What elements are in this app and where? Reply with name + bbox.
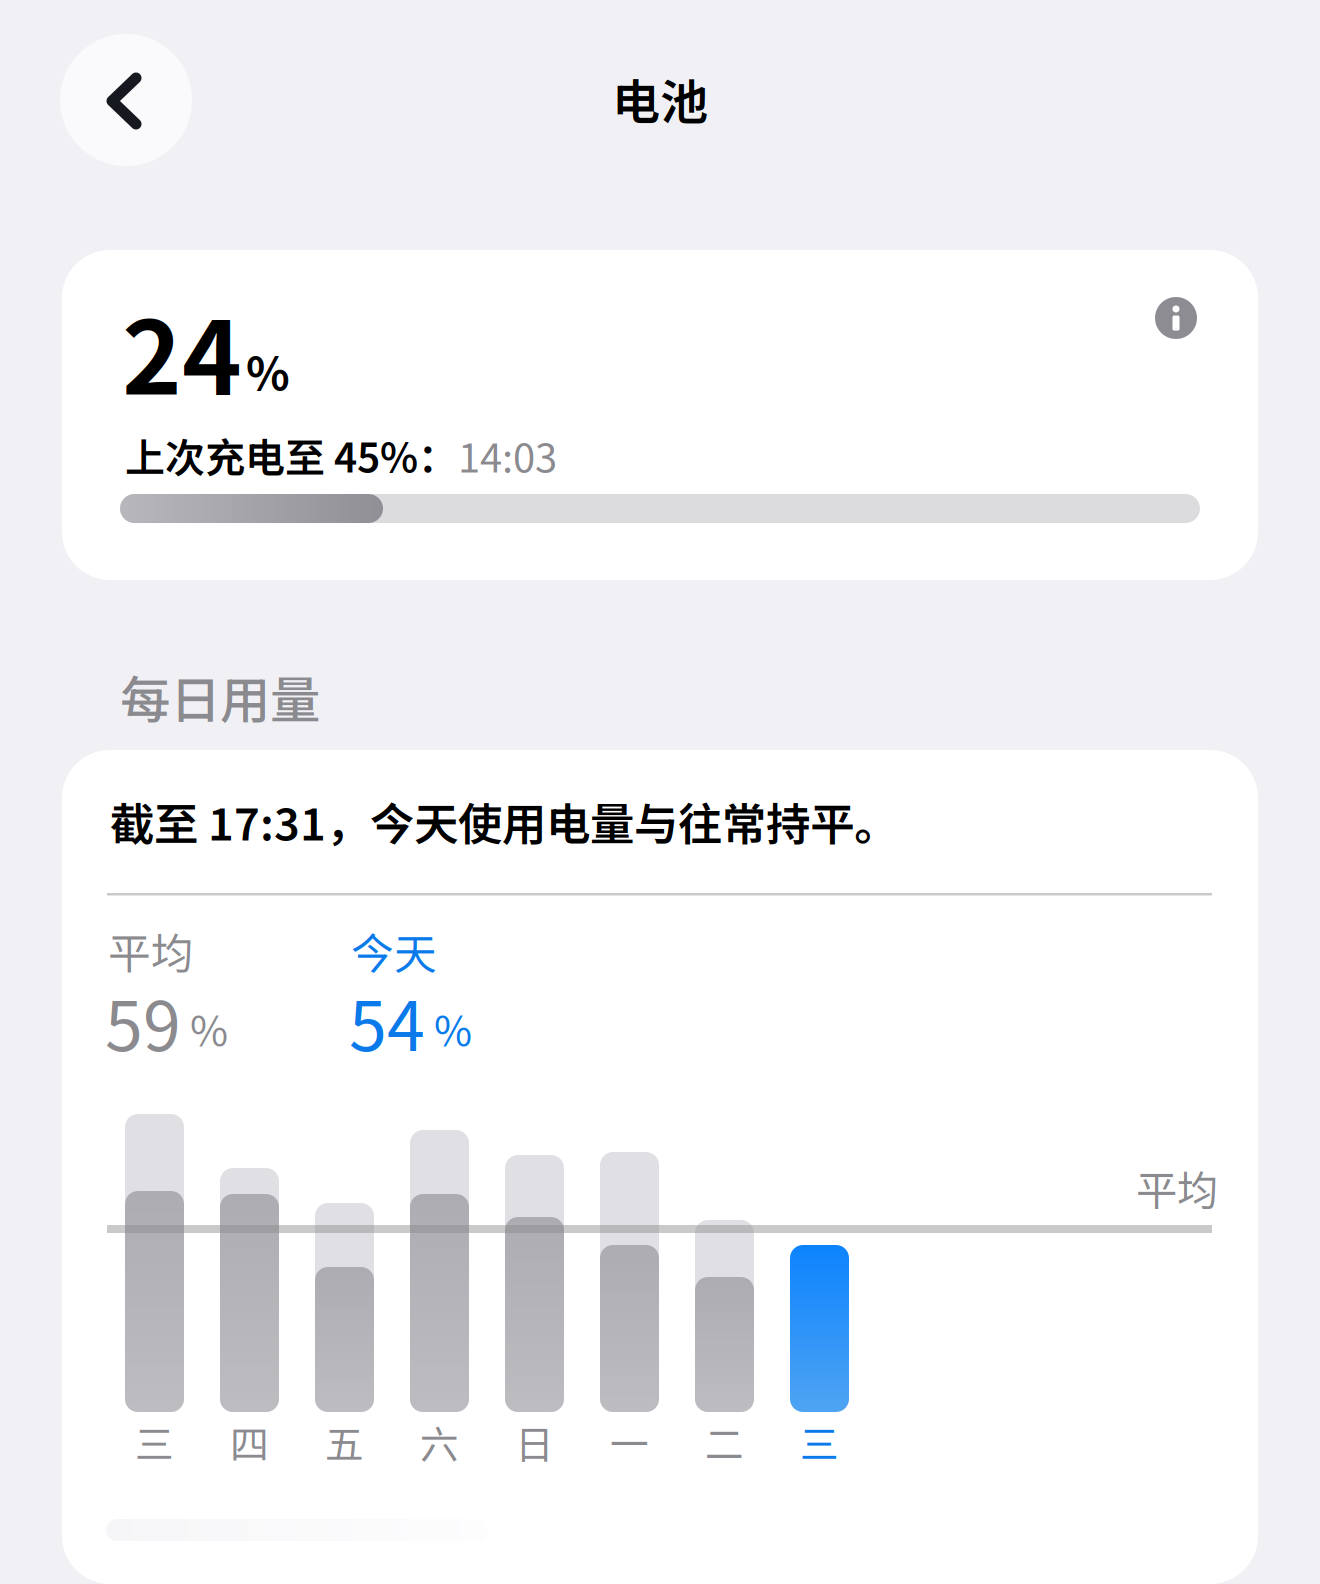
- staticText: 日: [515, 1414, 554, 1470]
- staticText: 59: [105, 972, 181, 1070]
- staticText: 平均: [108, 920, 194, 982]
- button[interactable]: Back: [60, 34, 192, 166]
- staticText: 每日用量: [120, 660, 320, 733]
- staticText: 截至 17:31，今天使用电量与往常持平。: [110, 789, 898, 853]
- button[interactable]: Battery information: [1155, 297, 1197, 339]
- staticText: 五: [325, 1414, 364, 1470]
- staticText: %: [190, 998, 228, 1058]
- staticText: 24: [122, 277, 242, 424]
- staticText: %: [246, 338, 290, 404]
- staticText: 电池: [612, 64, 708, 133]
- staticText: 上次充电至 45%：: [125, 426, 458, 484]
- staticText: %: [434, 998, 472, 1058]
- staticText: 一: [610, 1414, 649, 1470]
- staticText: 四: [230, 1414, 269, 1470]
- staticText: 六: [420, 1414, 459, 1470]
- staticText: 平均: [1136, 1158, 1218, 1218]
- staticText: 今天: [351, 920, 437, 982]
- staticText: 二: [705, 1414, 744, 1470]
- staticText: 54: [349, 972, 425, 1070]
- staticText: 14:03: [458, 426, 557, 484]
- staticText: 三: [135, 1414, 174, 1470]
- staticText: 三: [800, 1414, 839, 1470]
